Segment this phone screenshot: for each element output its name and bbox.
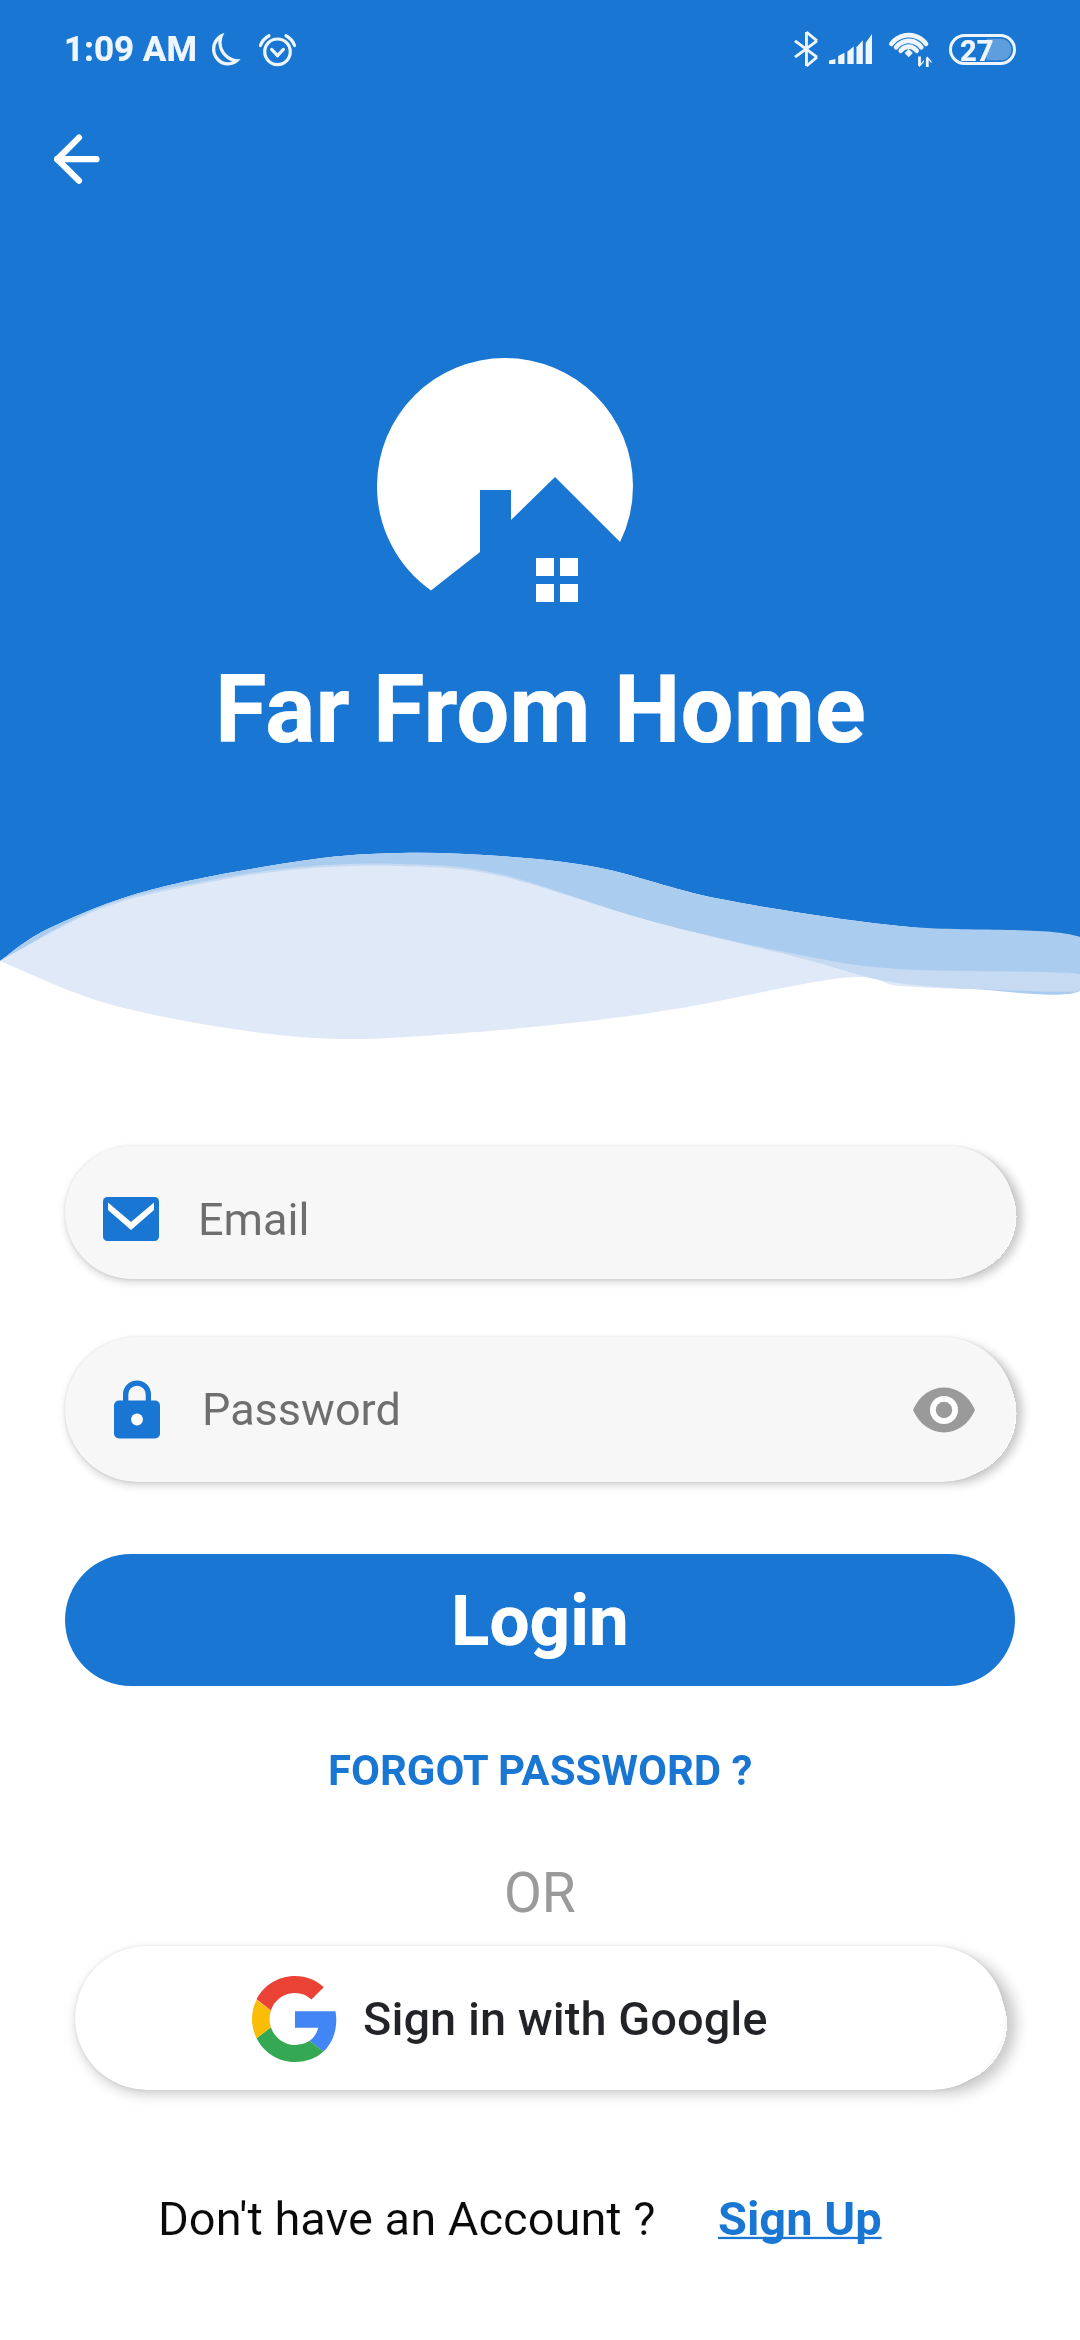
button[interactable]: Email [65, 1146, 1015, 1279]
staticText: OR [504, 1861, 576, 1925]
button[interactable]: Sign in with Google [75, 1946, 1005, 2090]
staticText: 1:09 AM [64, 29, 198, 70]
staticText: Email [198, 1193, 310, 1246]
button[interactable]: Show password [906, 1372, 982, 1448]
button[interactable]: Password [65, 1337, 1015, 1482]
staticText: Sign Up [718, 2191, 882, 2246]
button[interactable]: FORGOT PASSWORD ? [304, 1734, 777, 1807]
staticText: Sign in with Google [363, 1991, 768, 2046]
staticText: Don't have an Account ? [158, 2191, 656, 2246]
staticText: 27 [960, 34, 994, 65]
button[interactable]: Sign Up [718, 2191, 882, 2246]
staticText: FORGOT PASSWORD ? [328, 1746, 753, 1795]
staticText: Far From Home [215, 655, 866, 765]
button[interactable]: Back [12, 114, 98, 200]
staticText: Password [202, 1383, 401, 1436]
staticText: Login [451, 1579, 629, 1662]
button[interactable]: Login [65, 1554, 1015, 1686]
